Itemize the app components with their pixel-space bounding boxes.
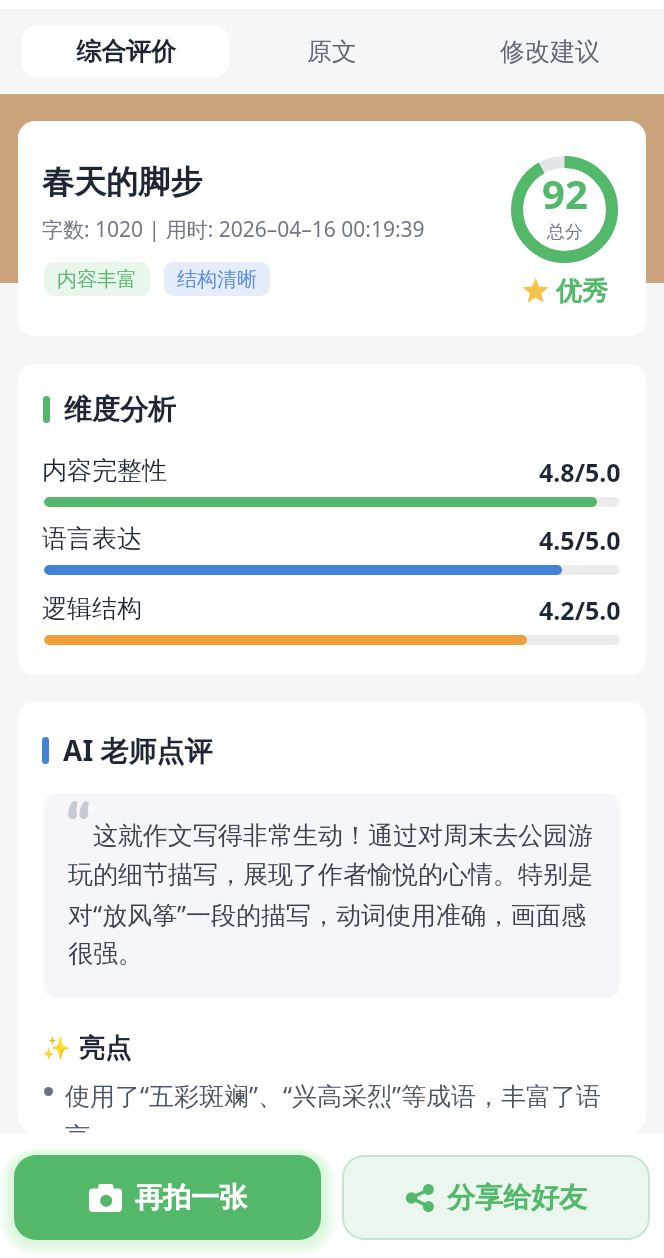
staticText: 分享给好友 <box>447 1180 587 1215</box>
staticText: 再拍一张 <box>135 1180 247 1215</box>
staticText: 内容完整性 <box>42 455 167 486</box>
staticText: 4.2/5.0 <box>539 593 621 627</box>
staticText: 使用了“五彩斑斓”、“兴高采烈”等成语，丰富了语言 <box>65 1078 622 1133</box>
staticText: 春天的脚步 <box>42 162 202 202</box>
button[interactable]: 分享给好友 <box>342 1155 650 1240</box>
staticText: 综合评价 <box>76 36 176 67</box>
staticText: 语言表达 <box>42 523 142 554</box>
staticText: 维度分析 <box>64 392 176 427</box>
staticText: 亮点 <box>79 1032 131 1065</box>
staticText: 内容丰富 <box>57 267 137 292</box>
staticText: 92 <box>542 166 588 220</box>
staticText: 4.8/5.0 <box>539 455 621 489</box>
staticText: 4.5/5.0 <box>539 523 621 557</box>
staticText: 逻辑结构 <box>42 593 142 624</box>
staticText: 修改建议 <box>500 36 600 67</box>
staticText: 原文 <box>307 36 357 67</box>
button[interactable]: 综合评价 <box>22 25 229 78</box>
staticText: 优秀 <box>556 275 608 308</box>
staticText: 字数: 1020 | 用时: 2026–04–16 00:19:39 <box>42 215 425 244</box>
staticText: ✨ <box>42 1035 71 1062</box>
staticText: 这就作文写得非常生动！通过对周末去公园游玩的细节描写，展现了作者愉悦的心情。特别… <box>68 817 609 970</box>
staticText: AI 老师点评 <box>63 731 213 769</box>
button[interactable]: 原文 <box>229 11 435 92</box>
staticText: 结构清晰 <box>177 267 257 292</box>
button[interactable]: 修改建议 <box>435 11 664 92</box>
button[interactable]: 再拍一张 <box>14 1155 321 1240</box>
staticText: 总分 <box>547 221 583 244</box>
